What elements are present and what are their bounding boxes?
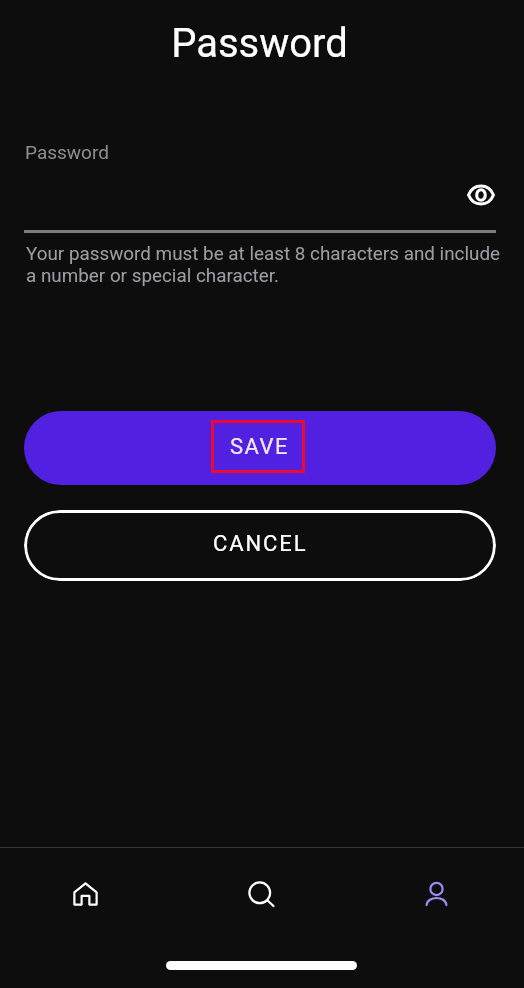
staticText: SAVE [230,434,289,460]
staticText: Your password must be at least 8 charact… [26,243,524,287]
button[interactable]: CANCEL [24,510,496,581]
staticText: Password [25,141,109,163]
button[interactable]: Profile [394,848,478,940]
button[interactable]: Show password [457,171,504,218]
button[interactable]: SAVE [24,411,496,485]
staticText: Password [24,20,495,67]
button[interactable]: Search [219,848,303,940]
staticText: CANCEL [213,531,308,557]
button[interactable]: Home [43,848,127,940]
